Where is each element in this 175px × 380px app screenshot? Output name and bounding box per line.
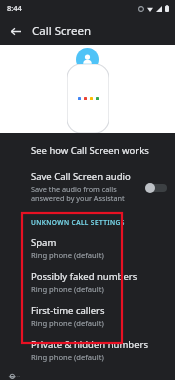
button[interactable]: Save Call Screen audio toggle (145, 182, 167, 193)
staticText: Ring phone (default) (31, 352, 104, 362)
staticText: Ring phone (default) (31, 250, 104, 260)
button[interactable]: See how Call Screen works (0, 142, 175, 159)
button[interactable]: Back (4, 20, 26, 42)
staticText: Spam (31, 236, 57, 249)
staticText: Ring phone (default) (31, 318, 104, 328)
staticText: Save the audio from calls answered by yo… (31, 184, 139, 204)
button[interactable]: First-time callers (0, 299, 175, 333)
staticText: First-time callers (31, 304, 105, 317)
staticText: Private & hidden numbers (31, 338, 148, 351)
staticText: Call Screen (32, 23, 92, 39)
button[interactable]: Spam (0, 231, 175, 265)
staticText: Save Call Screen audio (31, 170, 131, 183)
staticText: See how Call Screen works (31, 144, 149, 157)
button[interactable]: Save Call Screen audio (0, 168, 175, 206)
staticText: Ring phone (default) (31, 284, 104, 294)
button[interactable]: Private & hidden numbers (0, 333, 175, 367)
button[interactable]: Voice (0, 373, 175, 380)
staticText: 8:44 (7, 3, 22, 13)
staticText: Possibly faked numbers (31, 270, 138, 283)
button[interactable]: Possibly faked numbers (0, 265, 175, 299)
staticText: UNKNOWN CALL SETTINGS (31, 218, 125, 227)
